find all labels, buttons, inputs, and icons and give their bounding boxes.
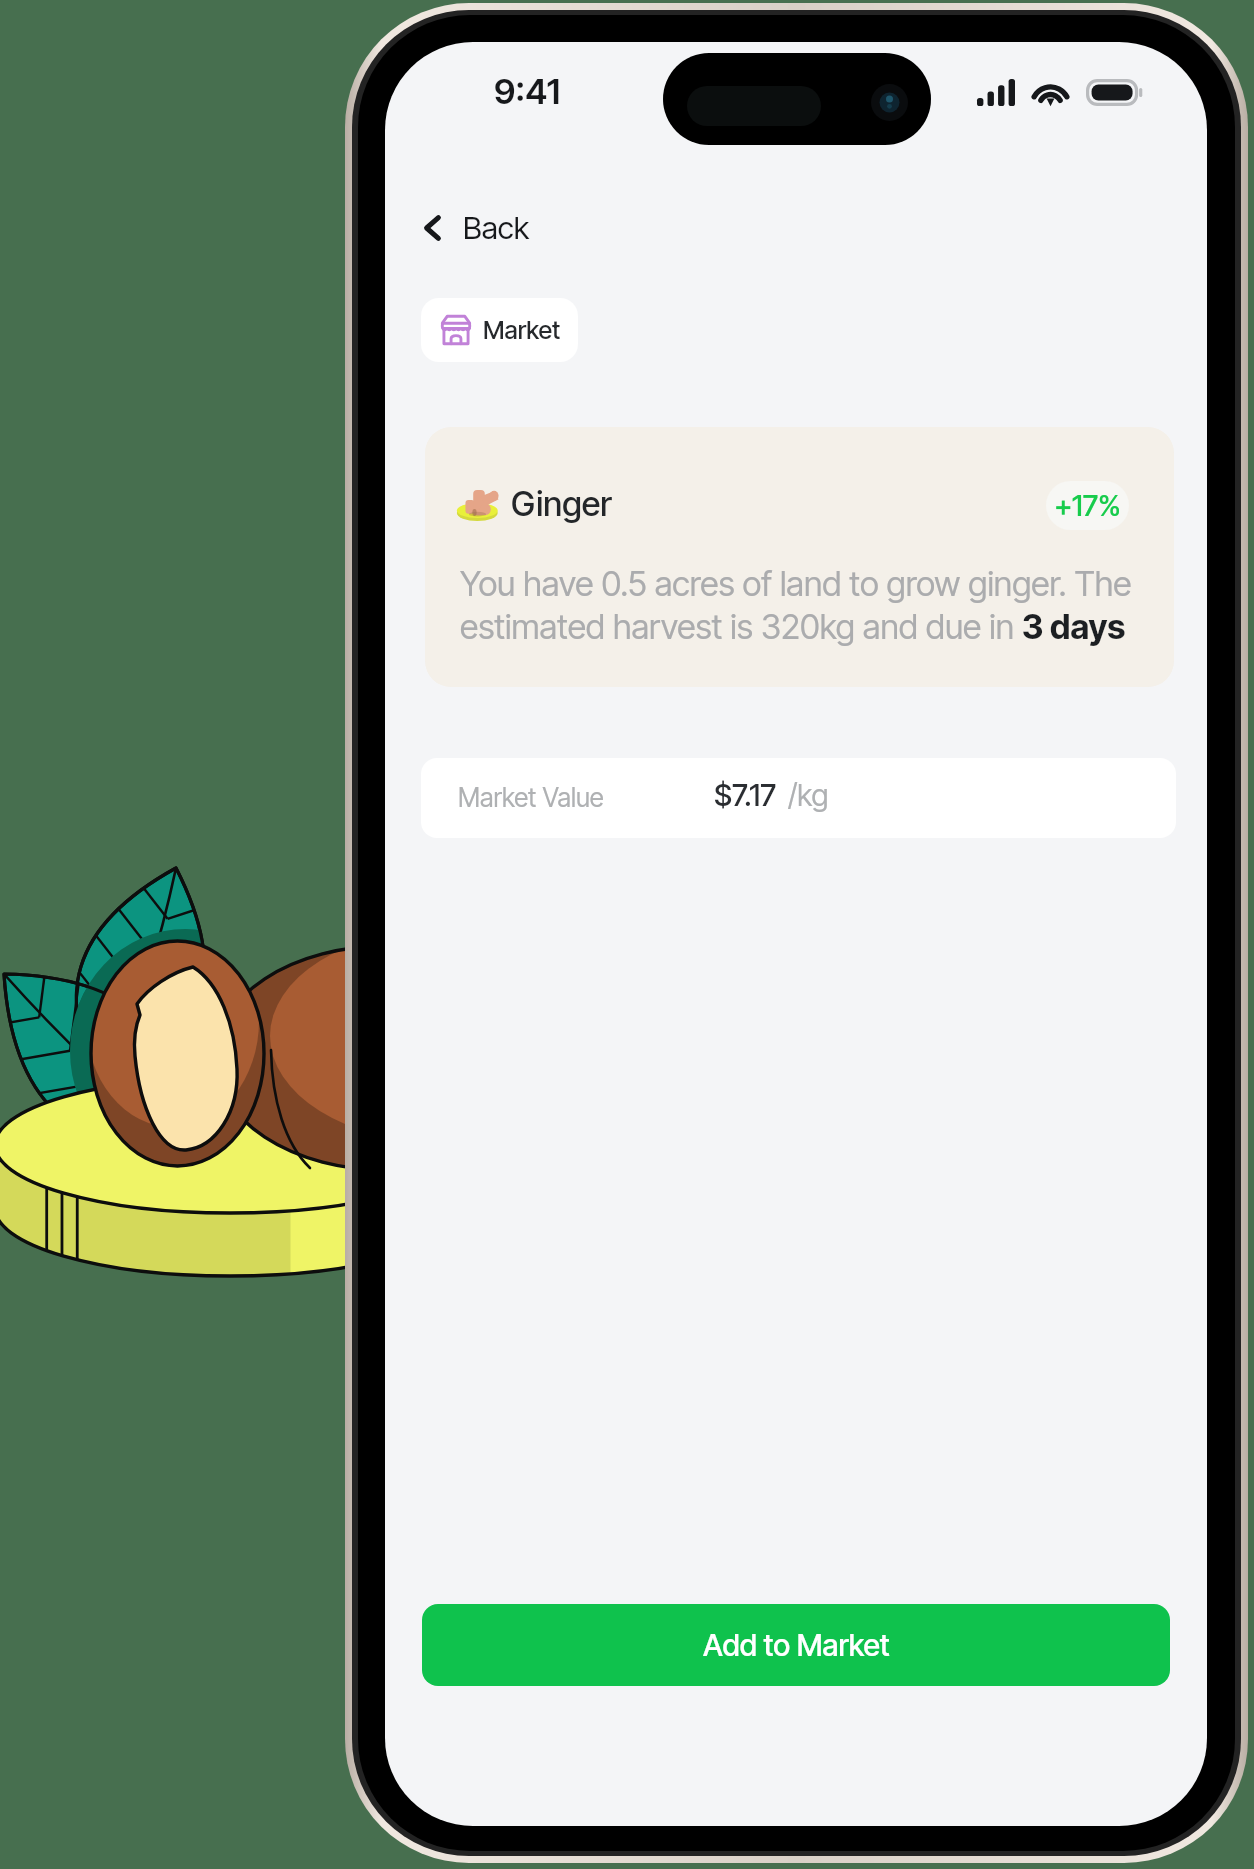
staticText: +17% xyxy=(1054,488,1121,523)
staticText: You have 0.5 acres of land to grow ginge… xyxy=(460,563,1160,648)
button[interactable]: Back xyxy=(413,199,542,257)
staticText: Add to Market xyxy=(703,1627,890,1663)
staticText: Market Value xyxy=(458,782,604,813)
staticText: $7.17 xyxy=(714,777,777,813)
button[interactable]: Market Value xyxy=(421,758,1176,838)
button[interactable]: Market xyxy=(421,298,578,362)
button[interactable]: Add to Market xyxy=(422,1604,1170,1686)
staticText: Back xyxy=(463,209,530,247)
button[interactable]: Ginger xyxy=(425,427,1174,687)
staticText: /kg xyxy=(788,777,829,813)
staticText: Market xyxy=(483,315,561,345)
staticText: 9:41 xyxy=(494,70,561,112)
staticText: Ginger xyxy=(511,483,612,524)
